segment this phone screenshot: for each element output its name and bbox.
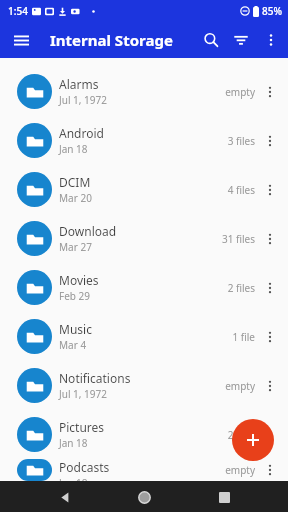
button[interactable]: Item options [255,371,285,401]
staticText: Jan 18 [59,142,88,156]
button[interactable]: Open navigation drawer [6,25,36,55]
staticText: Music [59,321,92,337]
button[interactable]: Item options [255,322,285,352]
button[interactable]: Podcasts [0,459,288,481]
staticText: Jul 1, 1972 [59,387,107,401]
button[interactable]: Item options [255,126,285,156]
button[interactable]: Notifications [0,361,288,410]
button[interactable]: Item options [255,224,285,254]
staticText: empty [195,379,255,393]
button[interactable]: Alarms [0,67,288,116]
staticText: Movies [59,272,99,288]
staticText: 1:54 [8,4,28,18]
staticText: Download [59,223,117,239]
staticText: Android [59,125,104,141]
staticText: Mar 20 [59,191,92,205]
button[interactable]: Android [0,116,288,165]
staticText: 4 files [195,183,255,197]
staticText: Notifications [59,370,131,386]
button[interactable]: Download [0,214,288,263]
staticText: Internal Storage [50,30,173,50]
staticText: 1 file [195,330,255,344]
button[interactable]: Item options [255,77,285,107]
button[interactable]: Item options [255,175,285,205]
button[interactable]: Add [232,419,274,461]
button[interactable]: Item options [255,273,285,303]
staticText: Jul 1, 1972 [59,93,107,107]
staticText: Podcasts [59,459,110,475]
staticText: 85% [262,4,282,18]
button[interactable]: Recent apps [209,482,239,512]
button[interactable]: Item options [255,420,285,450]
button[interactable]: Back [50,482,80,512]
button[interactable]: Movies [0,263,288,312]
staticText: Jan 18 [59,436,88,450]
staticText: empty [195,463,255,477]
button[interactable]: Music [0,312,288,361]
button[interactable]: More options [256,25,286,55]
staticText: DCIM [59,174,91,190]
staticText: 31 files [195,232,255,246]
button[interactable]: Pictures [0,410,288,459]
button[interactable]: Item options [255,459,285,481]
staticText: empty [195,85,255,99]
button[interactable]: Search [196,25,226,55]
button[interactable]: DCIM [0,165,288,214]
button[interactable]: Sort [226,25,256,55]
staticText: 2 files [195,428,255,442]
staticText: Pictures [59,419,105,435]
staticText: 2 files [195,281,255,295]
staticText: Mar 4 [59,338,87,352]
staticText: Jan 18 [59,476,88,481]
staticText: Alarms [59,76,99,92]
staticText: Feb 29 [59,289,91,303]
staticText: Mar 27 [59,240,92,254]
button[interactable]: Home [129,482,159,512]
staticText: 3 files [195,134,255,148]
